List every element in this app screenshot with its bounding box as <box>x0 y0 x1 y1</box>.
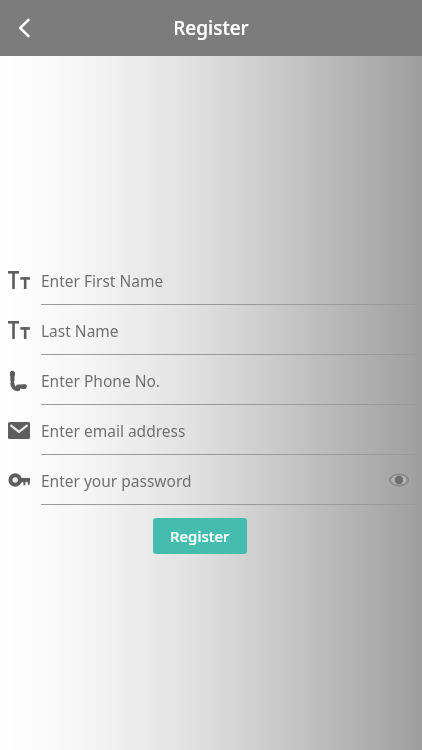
staticText: Enter your password <box>41 470 192 491</box>
button[interactable]: Register <box>153 518 247 554</box>
staticText: Last Name <box>41 320 119 341</box>
button[interactable]: Enter First Name <box>0 255 422 305</box>
button[interactable]: Last Name <box>0 305 422 355</box>
button[interactable]: Enter email address <box>0 405 422 455</box>
button[interactable]: Show password <box>382 463 416 497</box>
staticText: Register <box>170 526 230 546</box>
button[interactable]: Enter Phone No. <box>0 355 422 405</box>
button[interactable]: Enter your password <box>0 455 422 505</box>
staticText: Enter Phone No. <box>41 370 160 391</box>
staticText: Enter email address <box>41 420 186 441</box>
staticText: Enter First Name <box>41 270 164 291</box>
button[interactable]: Back <box>0 4 48 52</box>
staticText: Register <box>173 15 249 41</box>
